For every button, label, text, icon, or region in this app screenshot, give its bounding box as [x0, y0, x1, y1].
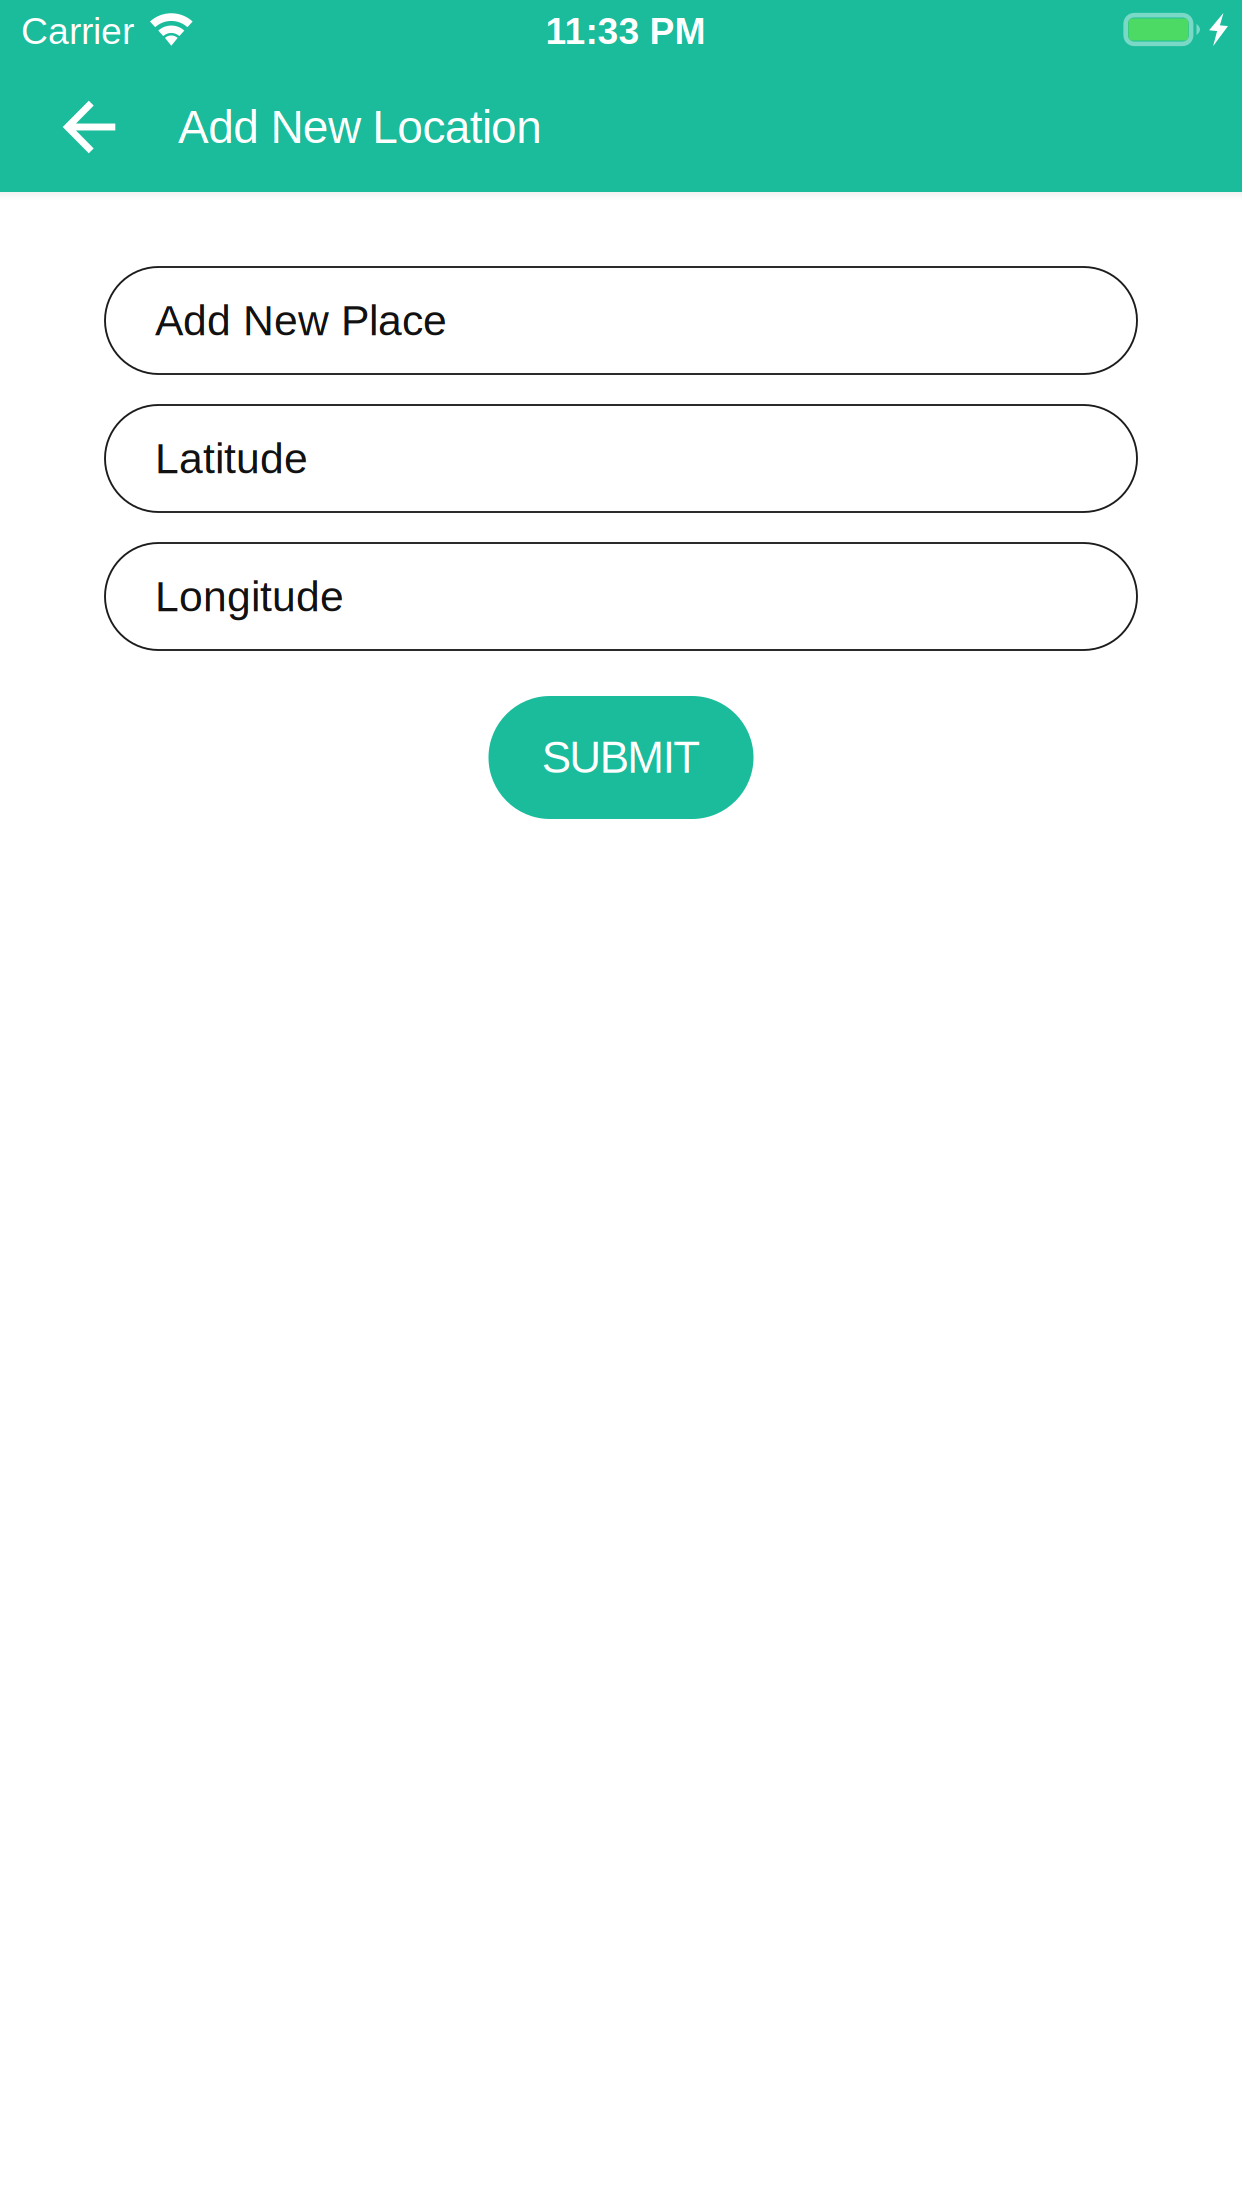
- button[interactable]: Back: [34, 72, 144, 182]
- button[interactable]: SUBMIT: [488, 696, 753, 819]
- staticText: SUBMIT: [542, 733, 700, 782]
- button[interactable]: Longitude: [105, 543, 1137, 650]
- button[interactable]: Latitude: [105, 405, 1137, 512]
- staticText: Carrier: [21, 10, 134, 52]
- staticText: Longitude: [155, 573, 344, 620]
- staticText: 11:33 PM: [545, 10, 705, 52]
- staticText: Add New Place: [155, 297, 447, 344]
- button[interactable]: Add New Place: [105, 267, 1137, 374]
- staticText: Add New Location: [178, 101, 542, 153]
- staticText: Latitude: [155, 435, 308, 482]
